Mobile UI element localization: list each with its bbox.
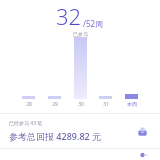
button[interactable]: 使用 43 张优惠券: [0, 149, 160, 160]
staticText: 已经参与 43 笔: [9, 120, 43, 127]
staticText: /52周: [83, 18, 104, 29]
staticText: 32: [56, 1, 82, 31]
staticText: 本周: [127, 101, 137, 107]
other: 参考总回报: [133, 122, 151, 140]
staticText: 30: [78, 101, 84, 108]
staticText: 已参与: [73, 31, 88, 37]
staticText: 28: [26, 101, 32, 108]
staticText: 参考总回报 4289.82 元: [9, 130, 102, 142]
staticText: 31: [103, 101, 109, 108]
button[interactable]: 已经参与 43 笔: [0, 114, 160, 148]
staticText: 29: [52, 101, 58, 108]
